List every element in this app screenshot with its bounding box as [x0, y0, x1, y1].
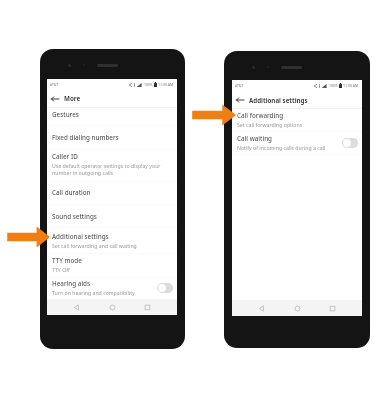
button[interactable]: Call waiting	[232, 134, 362, 151]
staticText: Notify of incoming calls during a call	[237, 144, 326, 151]
button[interactable]: TTY mode	[47, 256, 177, 273]
staticText: Fixed dialing numbers	[52, 133, 119, 142]
staticText: Additional settings	[249, 96, 308, 104]
button[interactable]: Additional settings	[47, 232, 177, 249]
button[interactable]: Home	[106, 301, 119, 314]
staticText: Turn on hearing and compatibility	[52, 289, 135, 296]
staticText: More	[64, 94, 81, 103]
button[interactable]: Call duration	[47, 188, 177, 197]
staticText: Call duration	[52, 188, 91, 197]
button[interactable]: Home	[291, 302, 304, 315]
button[interactable]: Fixed dialing numbers	[47, 133, 177, 142]
staticText: 100%	[144, 82, 153, 87]
staticText: TTY mode	[52, 256, 82, 265]
staticText: Call forwarding	[237, 111, 284, 120]
staticText: AT&T	[50, 82, 59, 87]
staticText: Call waiting	[237, 134, 272, 143]
staticText: 11:00 AM	[343, 83, 359, 88]
staticText: Set call forwarding options	[237, 121, 303, 128]
staticText: Sound settings	[52, 212, 97, 221]
button[interactable]: Recent apps	[141, 301, 154, 314]
button[interactable]: Back	[255, 302, 268, 315]
button[interactable]: Navigate up	[50, 93, 61, 105]
button[interactable]: Caller ID	[47, 152, 177, 176]
staticText: Additional settings	[52, 232, 109, 241]
staticText: 100%	[329, 83, 338, 88]
staticText: 11:00 AM	[158, 82, 174, 87]
staticText: Use default operator settings to display…	[52, 162, 161, 176]
staticText: Set call forwarding and call waiting	[52, 242, 137, 249]
staticText: Gestures	[52, 110, 79, 119]
button[interactable]: Call forwarding	[232, 111, 362, 128]
staticText: Caller ID	[52, 152, 78, 161]
button[interactable]: Navigate up	[235, 94, 246, 106]
button[interactable]: Gestures	[47, 110, 177, 119]
button[interactable]: Recent apps	[326, 302, 339, 315]
staticText: Hearing aids	[52, 279, 91, 288]
button[interactable]: Back	[70, 301, 83, 314]
button[interactable]: Sound settings	[47, 212, 177, 221]
staticText: TTY Off	[52, 266, 70, 273]
staticText: AT&T	[235, 83, 244, 88]
button[interactable]: Hearing aids	[47, 279, 177, 296]
